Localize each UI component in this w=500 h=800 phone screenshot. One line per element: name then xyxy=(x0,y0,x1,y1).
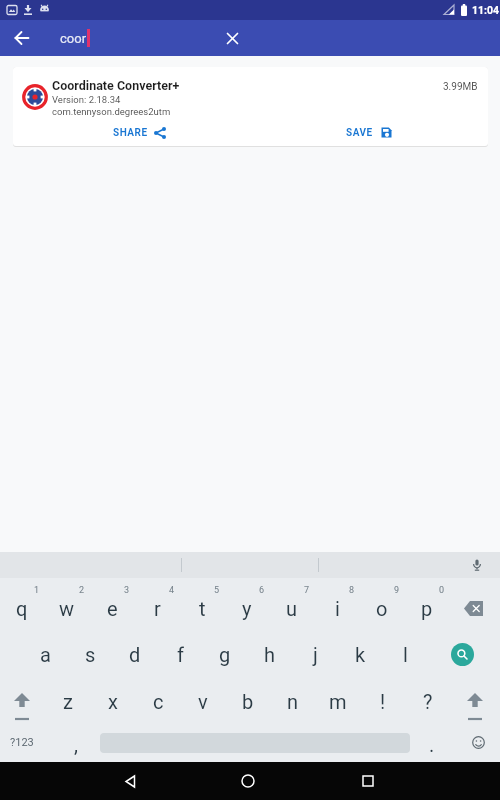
staticText: 8 xyxy=(349,585,355,596)
staticText: n xyxy=(287,690,299,713)
button[interactable]: r xyxy=(135,585,179,631)
button[interactable]: v xyxy=(181,678,225,724)
button[interactable]: s xyxy=(68,631,112,677)
staticText: t xyxy=(199,597,206,620)
staticText: b xyxy=(242,690,254,713)
button[interactable]: ? xyxy=(406,678,450,724)
staticText: u xyxy=(286,597,298,620)
button[interactable]: k xyxy=(338,631,382,677)
button[interactable]: z xyxy=(46,678,90,724)
staticText: k xyxy=(355,643,366,666)
staticText: y xyxy=(242,597,252,620)
button[interactable] xyxy=(452,585,496,631)
button[interactable] xyxy=(106,762,154,800)
button[interactable]: w xyxy=(45,585,89,631)
button[interactable]: p xyxy=(405,585,449,631)
staticText: f xyxy=(177,643,184,666)
staticText: 3.99MB xyxy=(443,81,478,93)
staticText: coor xyxy=(60,31,87,46)
button[interactable]: j xyxy=(293,631,337,677)
staticText: SHARE xyxy=(113,127,148,139)
button[interactable]: b xyxy=(226,678,270,724)
button[interactable] xyxy=(440,631,484,677)
button[interactable] xyxy=(8,24,36,52)
staticText: m xyxy=(329,690,347,713)
staticText: 3 xyxy=(124,585,130,596)
staticText: 6 xyxy=(259,585,265,596)
button[interactable]: h xyxy=(248,631,292,677)
staticText: SAVE xyxy=(346,127,373,139)
button[interactable]: , xyxy=(54,721,98,767)
staticText: o xyxy=(376,597,388,620)
button[interactable] xyxy=(224,762,272,800)
staticText: Coordinate Converter+ xyxy=(52,78,180,93)
button[interactable]: Coordinate Converter+ xyxy=(13,67,488,146)
button[interactable]: i xyxy=(315,585,359,631)
button[interactable]: m xyxy=(316,678,360,724)
staticText: l xyxy=(403,643,408,666)
button[interactable]: e xyxy=(90,585,134,631)
staticText: , xyxy=(74,733,78,756)
staticText: q xyxy=(16,597,28,620)
staticText: h xyxy=(264,643,276,666)
button[interactable]: SHARE xyxy=(13,120,250,146)
staticText: 2 xyxy=(79,585,85,596)
staticText: w xyxy=(59,597,75,620)
button[interactable] xyxy=(468,556,486,574)
staticText: x xyxy=(108,690,118,713)
button[interactable]: l xyxy=(383,631,427,677)
staticText: g xyxy=(219,643,231,666)
staticText: 4 xyxy=(169,585,175,596)
button[interactable]: x xyxy=(91,678,135,724)
staticText: 11:04 xyxy=(472,4,500,16)
staticText: s xyxy=(85,643,96,666)
button[interactable]: ! xyxy=(361,678,405,724)
button[interactable]: y xyxy=(225,585,269,631)
staticText: e xyxy=(107,597,118,620)
button[interactable] xyxy=(218,24,246,52)
staticText: r xyxy=(154,597,161,620)
staticText: 5 xyxy=(214,585,220,596)
staticText: z xyxy=(63,690,73,713)
button[interactable]: d xyxy=(113,631,157,677)
staticText: . xyxy=(429,733,435,756)
button[interactable]: ?123 xyxy=(0,723,44,762)
button[interactable]: c xyxy=(136,678,180,724)
staticText: com.tennyson.degrees2utm xyxy=(52,106,171,117)
staticText: i xyxy=(335,597,340,620)
staticText: p xyxy=(421,597,433,620)
staticText: a xyxy=(40,643,51,666)
staticText: c xyxy=(153,690,164,713)
button[interactable]: u xyxy=(270,585,314,631)
button[interactable]: n xyxy=(271,678,315,724)
staticText: j xyxy=(313,643,318,666)
button[interactable]: f xyxy=(158,631,202,677)
button[interactable]: SAVE xyxy=(250,120,488,146)
staticText: ?123 xyxy=(10,736,34,749)
button[interactable] xyxy=(344,762,392,800)
button[interactable]: o xyxy=(360,585,404,631)
staticText: ! xyxy=(380,690,386,713)
button[interactable]: a xyxy=(23,631,67,677)
button[interactable] xyxy=(459,723,497,762)
button[interactable]: q xyxy=(0,585,44,631)
staticText: ? xyxy=(423,690,433,713)
button[interactable]: g xyxy=(203,631,247,677)
staticText: Version: 2.18.34 xyxy=(52,94,121,105)
staticText: 1 xyxy=(34,585,40,596)
staticText: 0 xyxy=(439,585,445,596)
button[interactable] xyxy=(0,678,44,724)
button[interactable] xyxy=(453,678,497,724)
staticText: 9 xyxy=(394,585,400,596)
staticText: d xyxy=(129,643,141,666)
button[interactable]: . xyxy=(410,721,454,767)
staticText: 7 xyxy=(304,585,310,596)
staticText: v xyxy=(198,690,208,713)
button[interactable]: t xyxy=(180,585,224,631)
